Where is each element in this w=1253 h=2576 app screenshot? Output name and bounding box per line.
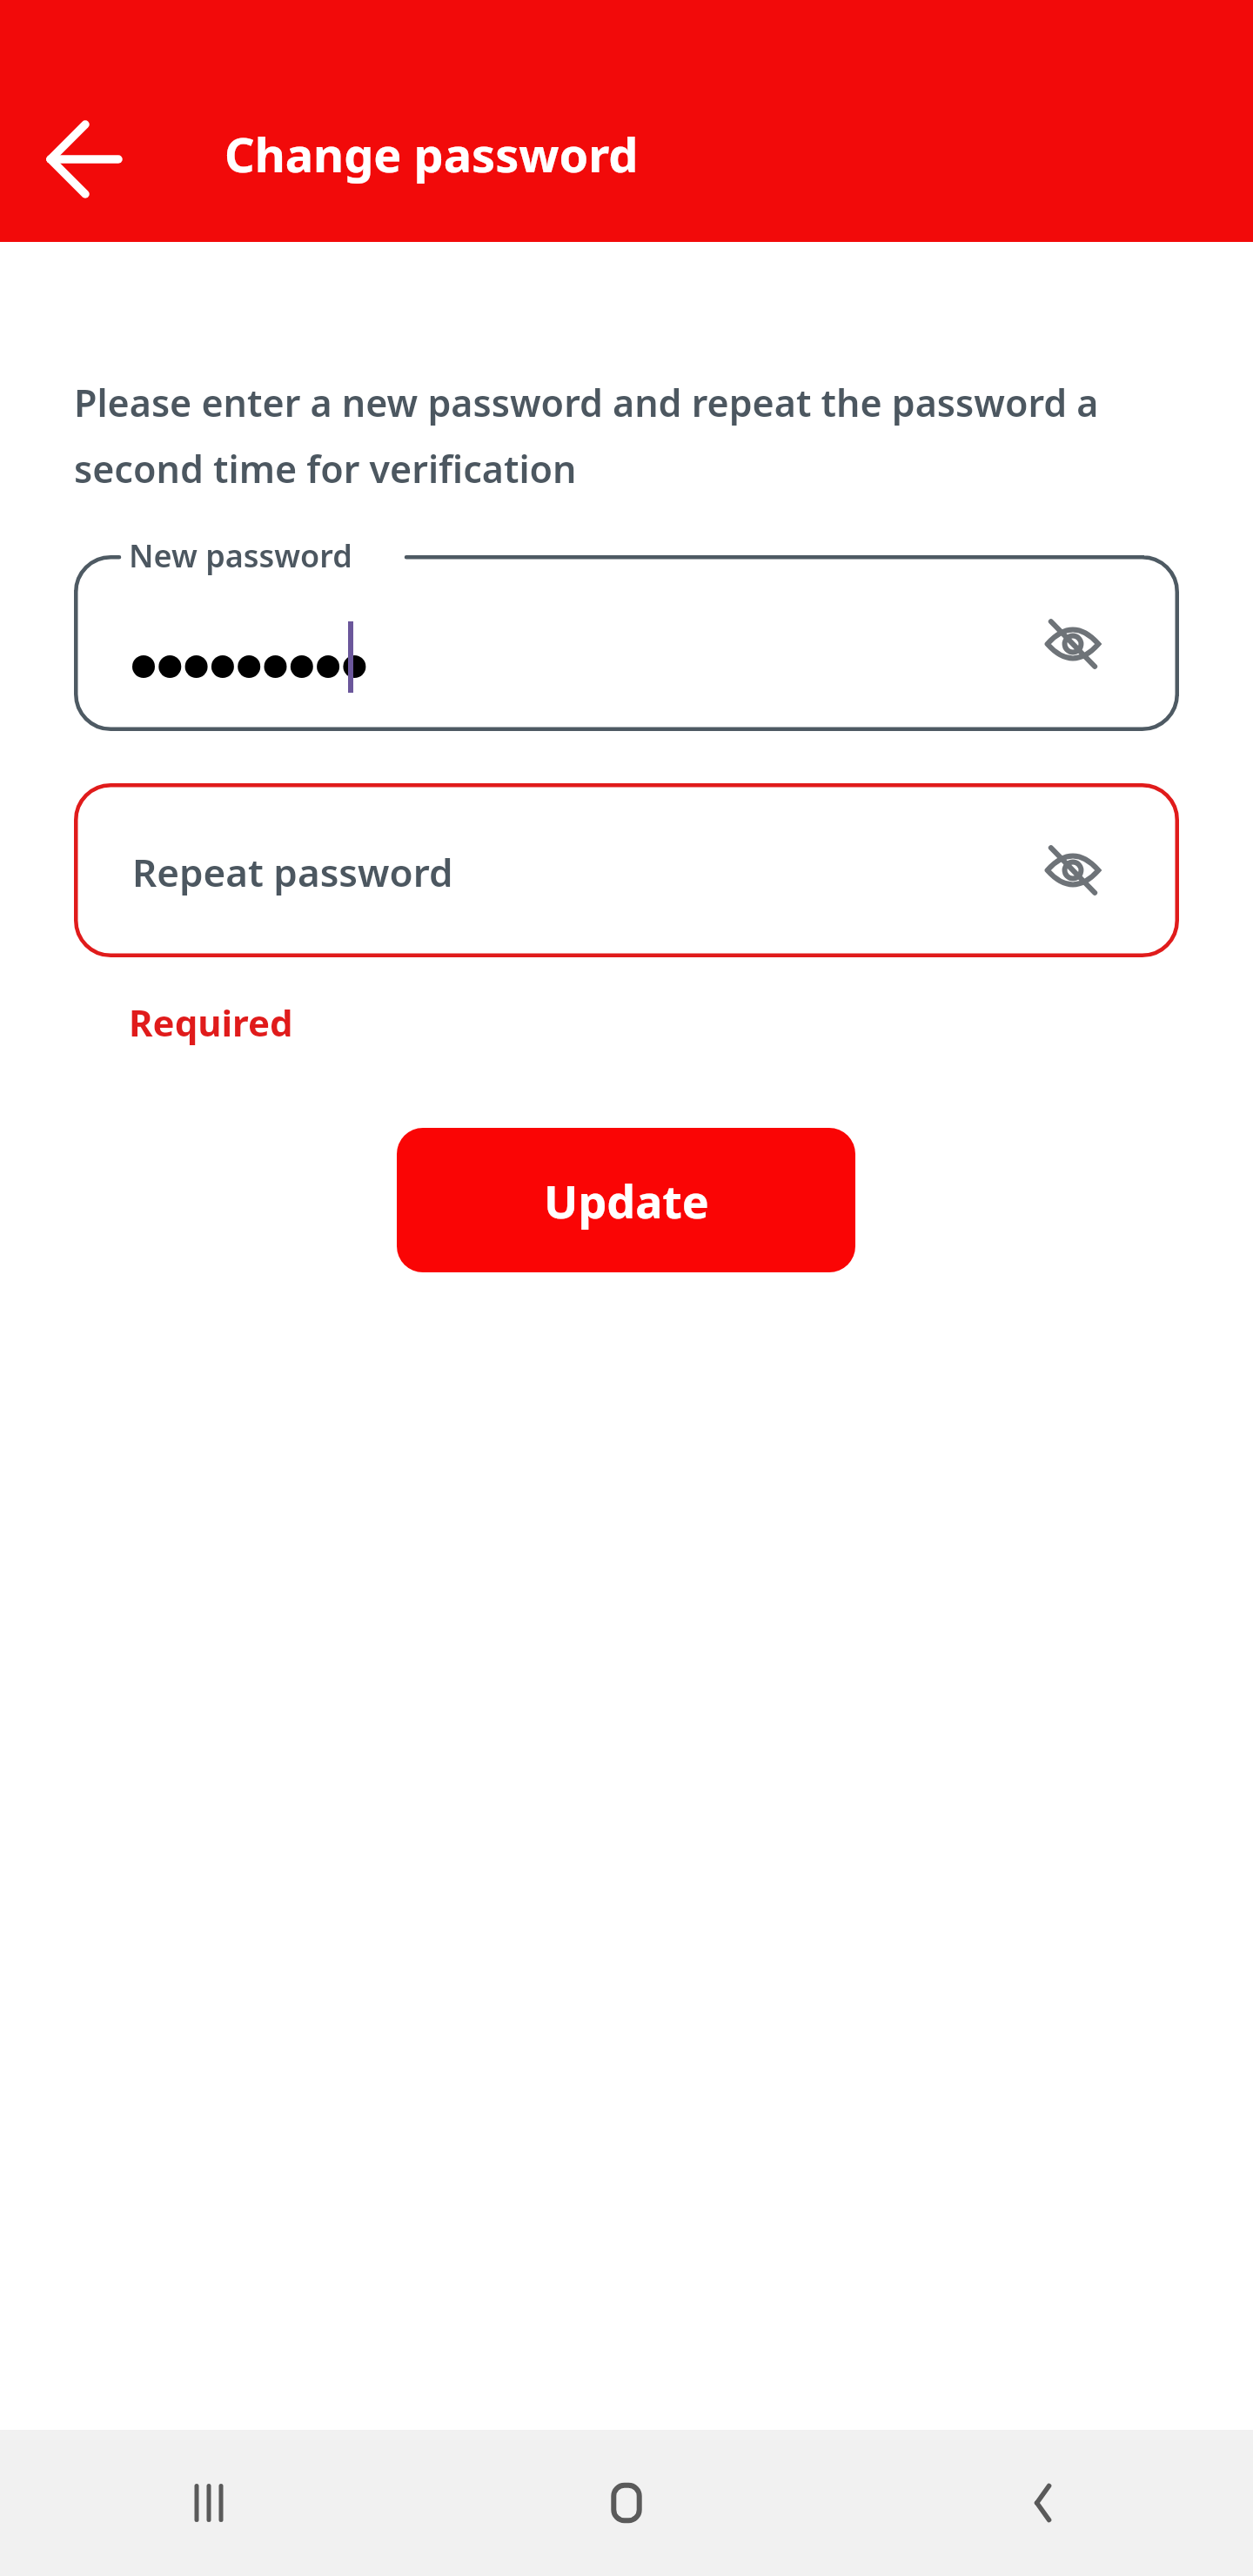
button[interactable]: Home <box>418 2430 835 2576</box>
staticText: Please enter a new password and repeat t… <box>74 377 1175 493</box>
button[interactable]: Toggle password visibility <box>1042 840 1103 901</box>
staticText: Required <box>129 997 293 1047</box>
staticText: Change password <box>224 122 639 186</box>
staticText: Update <box>544 1170 709 1231</box>
button[interactable]: Update <box>397 1128 855 1272</box>
staticText: Repeat password <box>132 846 453 898</box>
button[interactable]: Toggle password visibility <box>1042 614 1103 674</box>
button[interactable]: Back <box>37 109 137 210</box>
staticText: New password <box>129 534 352 577</box>
button[interactable]: Back <box>835 2430 1253 2576</box>
button[interactable]: Toggle password visibility <box>74 555 1179 731</box>
button[interactable]: Repeat password <box>74 783 1179 957</box>
button[interactable]: Recents <box>0 2430 418 2576</box>
